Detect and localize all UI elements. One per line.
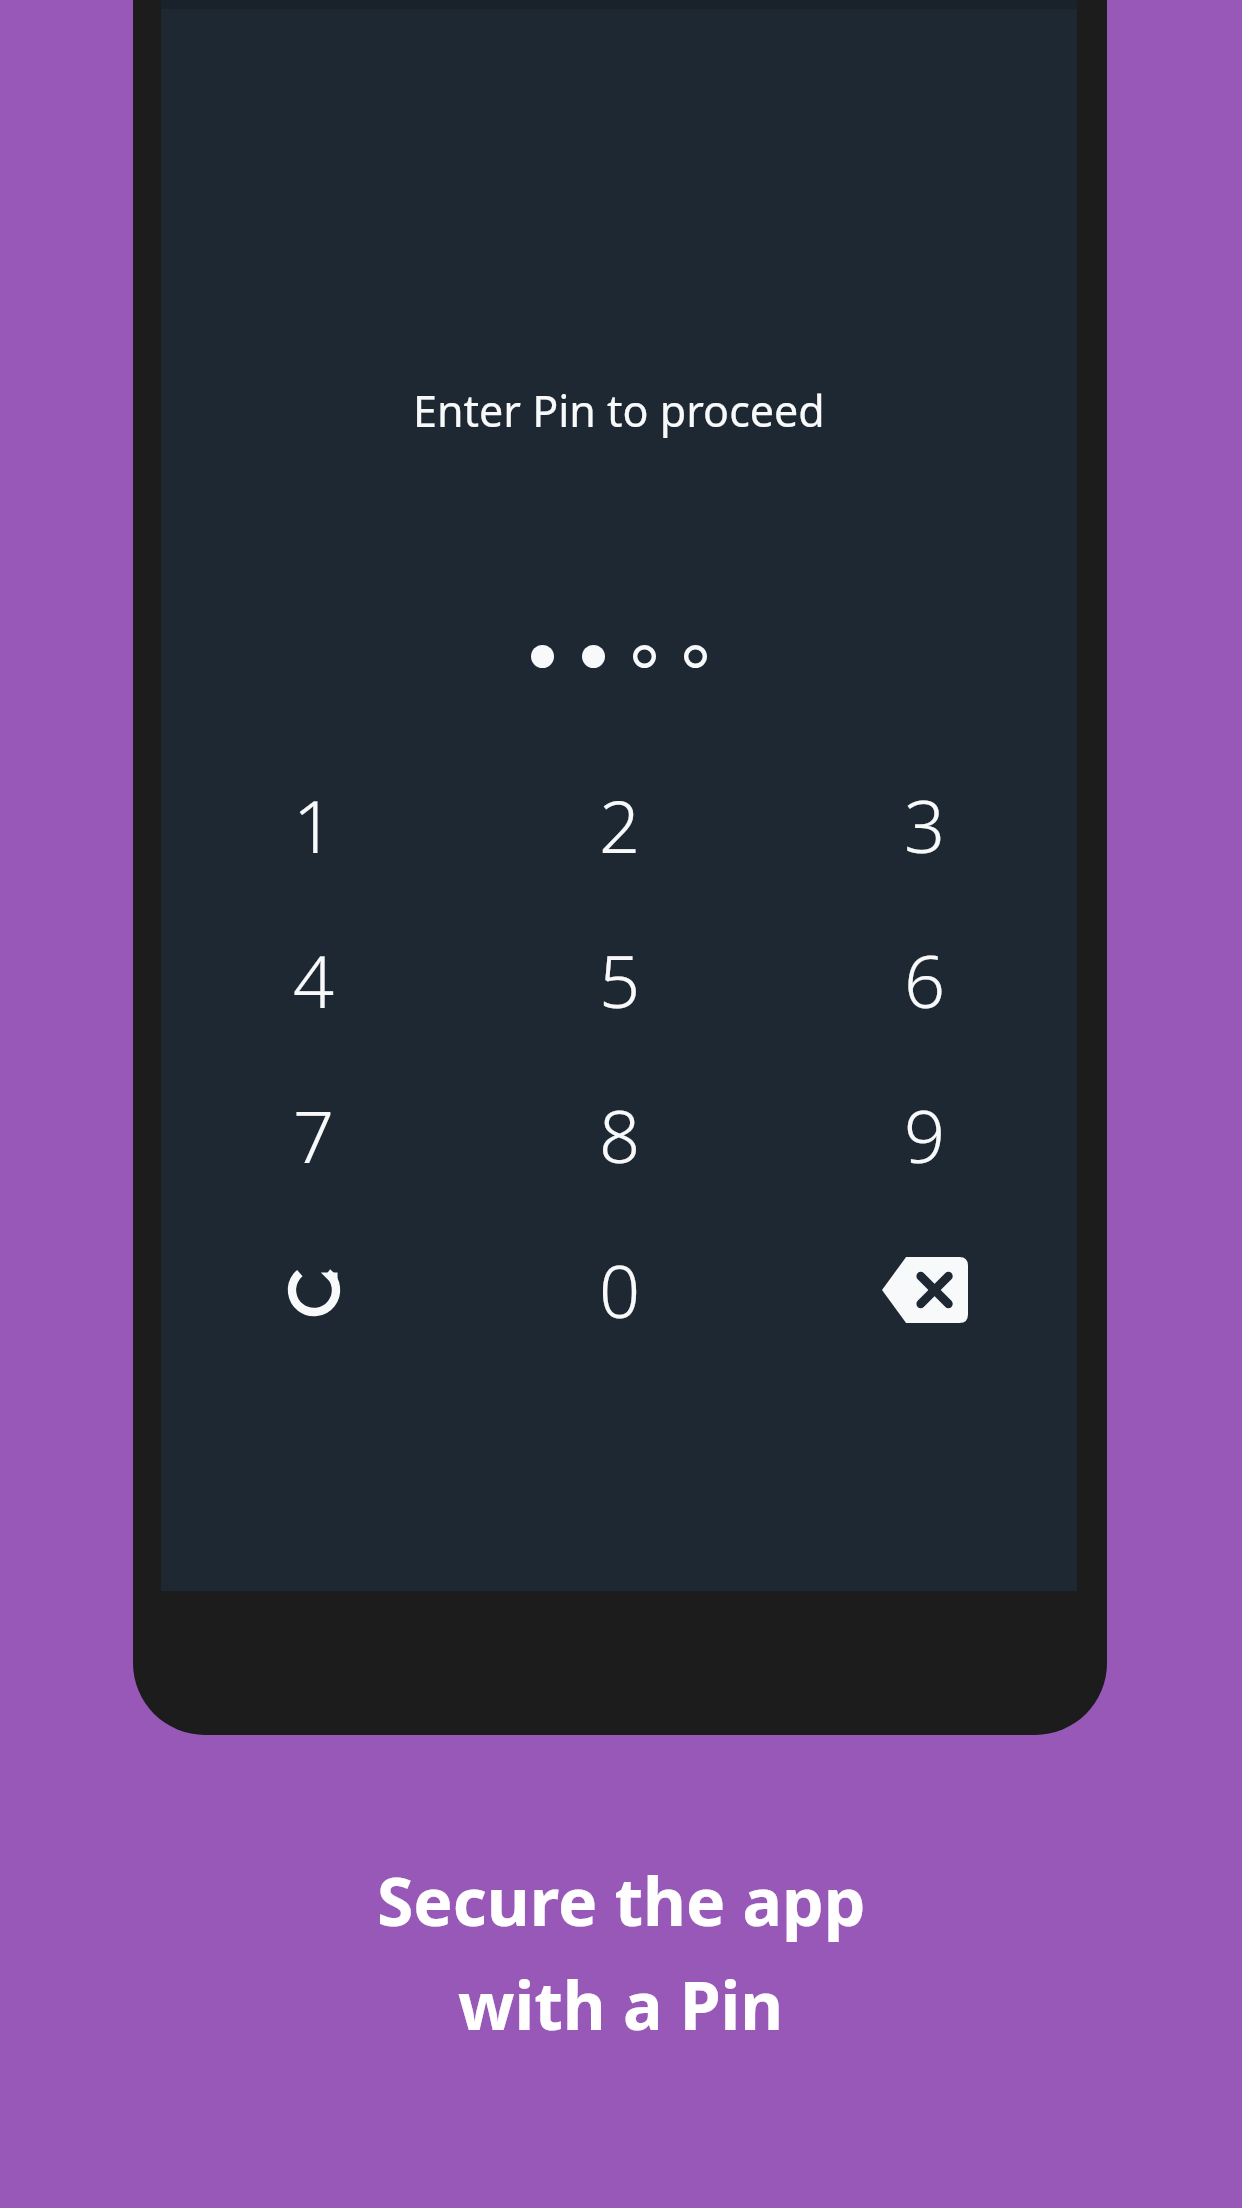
button[interactable]: 7 — [161, 1057, 467, 1212]
staticText: Enter Pin to proceed — [413, 381, 825, 440]
button[interactable]: 2 — [467, 747, 772, 902]
staticText: 9 — [904, 1086, 946, 1184]
button[interactable]: 6 — [772, 902, 1077, 1057]
button[interactable]: 0 — [467, 1212, 772, 1367]
staticText: 5 — [599, 931, 641, 1029]
staticText: 6 — [904, 931, 946, 1029]
button[interactable]: 8 — [467, 1057, 772, 1212]
staticText: 8 — [599, 1086, 641, 1184]
button[interactable]: 3 — [772, 747, 1077, 902]
button[interactable]: 1 — [161, 747, 467, 902]
button[interactable]: 4 — [161, 902, 467, 1057]
staticText: 1 — [293, 776, 335, 874]
staticText: 2 — [599, 776, 641, 874]
button[interactable]: 5 — [467, 902, 772, 1057]
staticText: 7 — [293, 1086, 335, 1184]
staticText: with a Pin — [458, 1959, 784, 2049]
staticText: 3 — [904, 776, 946, 874]
staticText: Secure the app — [377, 1855, 866, 1945]
staticText: 4 — [293, 931, 335, 1029]
staticText: 0 — [599, 1241, 641, 1339]
button[interactable]: 9 — [772, 1057, 1077, 1212]
button[interactable]: Backspace — [772, 1212, 1077, 1367]
button[interactable]: Reset — [161, 1212, 467, 1367]
